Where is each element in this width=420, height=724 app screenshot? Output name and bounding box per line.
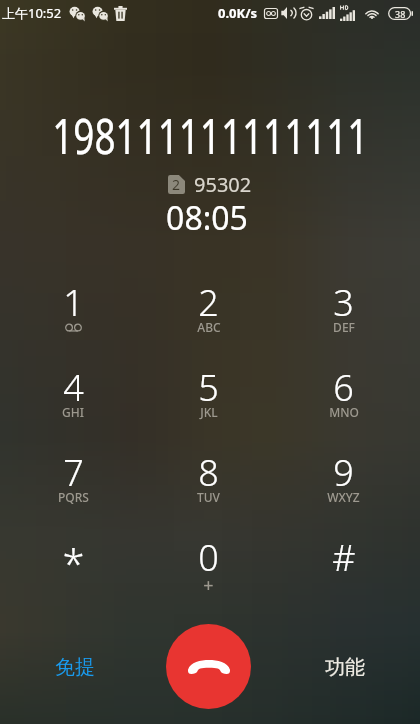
- staticText: 7: [63, 448, 84, 497]
- staticText: 5: [198, 363, 219, 412]
- button[interactable]: *: [5, 523, 141, 608]
- staticText: #: [332, 533, 356, 582]
- button[interactable]: 3: [276, 268, 411, 353]
- staticText: 2: [172, 175, 181, 194]
- button[interactable]: 免提: [20, 625, 130, 710]
- staticText: 免提: [55, 655, 95, 680]
- staticText: 1: [63, 278, 84, 327]
- staticText: 95302: [194, 171, 252, 198]
- staticText: *: [62, 536, 85, 590]
- staticText: JKL: [200, 404, 218, 420]
- button[interactable]: 1: [5, 268, 141, 353]
- button[interactable]: 5: [141, 353, 276, 438]
- staticText: GHI: [62, 404, 84, 420]
- staticText: 38: [395, 8, 406, 20]
- button[interactable]: End call: [166, 624, 251, 709]
- button[interactable]: 9: [276, 438, 411, 523]
- staticText: 上午10:52: [2, 4, 62, 22]
- staticText: 4: [63, 363, 84, 412]
- staticText: ABC: [197, 319, 221, 335]
- staticText: 6: [333, 363, 354, 412]
- staticText: 2: [198, 278, 219, 327]
- button[interactable]: 8: [141, 438, 276, 523]
- staticText: TUV: [197, 489, 220, 505]
- button[interactable]: 7: [5, 438, 141, 523]
- staticText: 功能: [325, 655, 365, 680]
- staticText: 08:05: [166, 196, 248, 240]
- staticText: WXYZ: [327, 489, 360, 505]
- staticText: MNO: [329, 404, 359, 420]
- staticText: PQRS: [58, 489, 89, 505]
- staticText: 0.0K/s: [218, 4, 258, 22]
- button[interactable]: #: [276, 523, 411, 608]
- button[interactable]: 功能: [290, 625, 400, 710]
- button[interactable]: 6: [276, 353, 411, 438]
- staticText: 8: [198, 448, 219, 497]
- staticText: DEF: [333, 319, 355, 335]
- button[interactable]: 0: [141, 523, 276, 608]
- button[interactable]: 4: [5, 353, 141, 438]
- staticText: 9: [333, 448, 354, 497]
- staticText: 3: [333, 278, 354, 327]
- staticText: 0: [198, 533, 219, 582]
- staticText: +: [203, 573, 214, 598]
- button[interactable]: 2: [141, 268, 276, 353]
- staticText: 1981111111111111: [52, 102, 368, 169]
